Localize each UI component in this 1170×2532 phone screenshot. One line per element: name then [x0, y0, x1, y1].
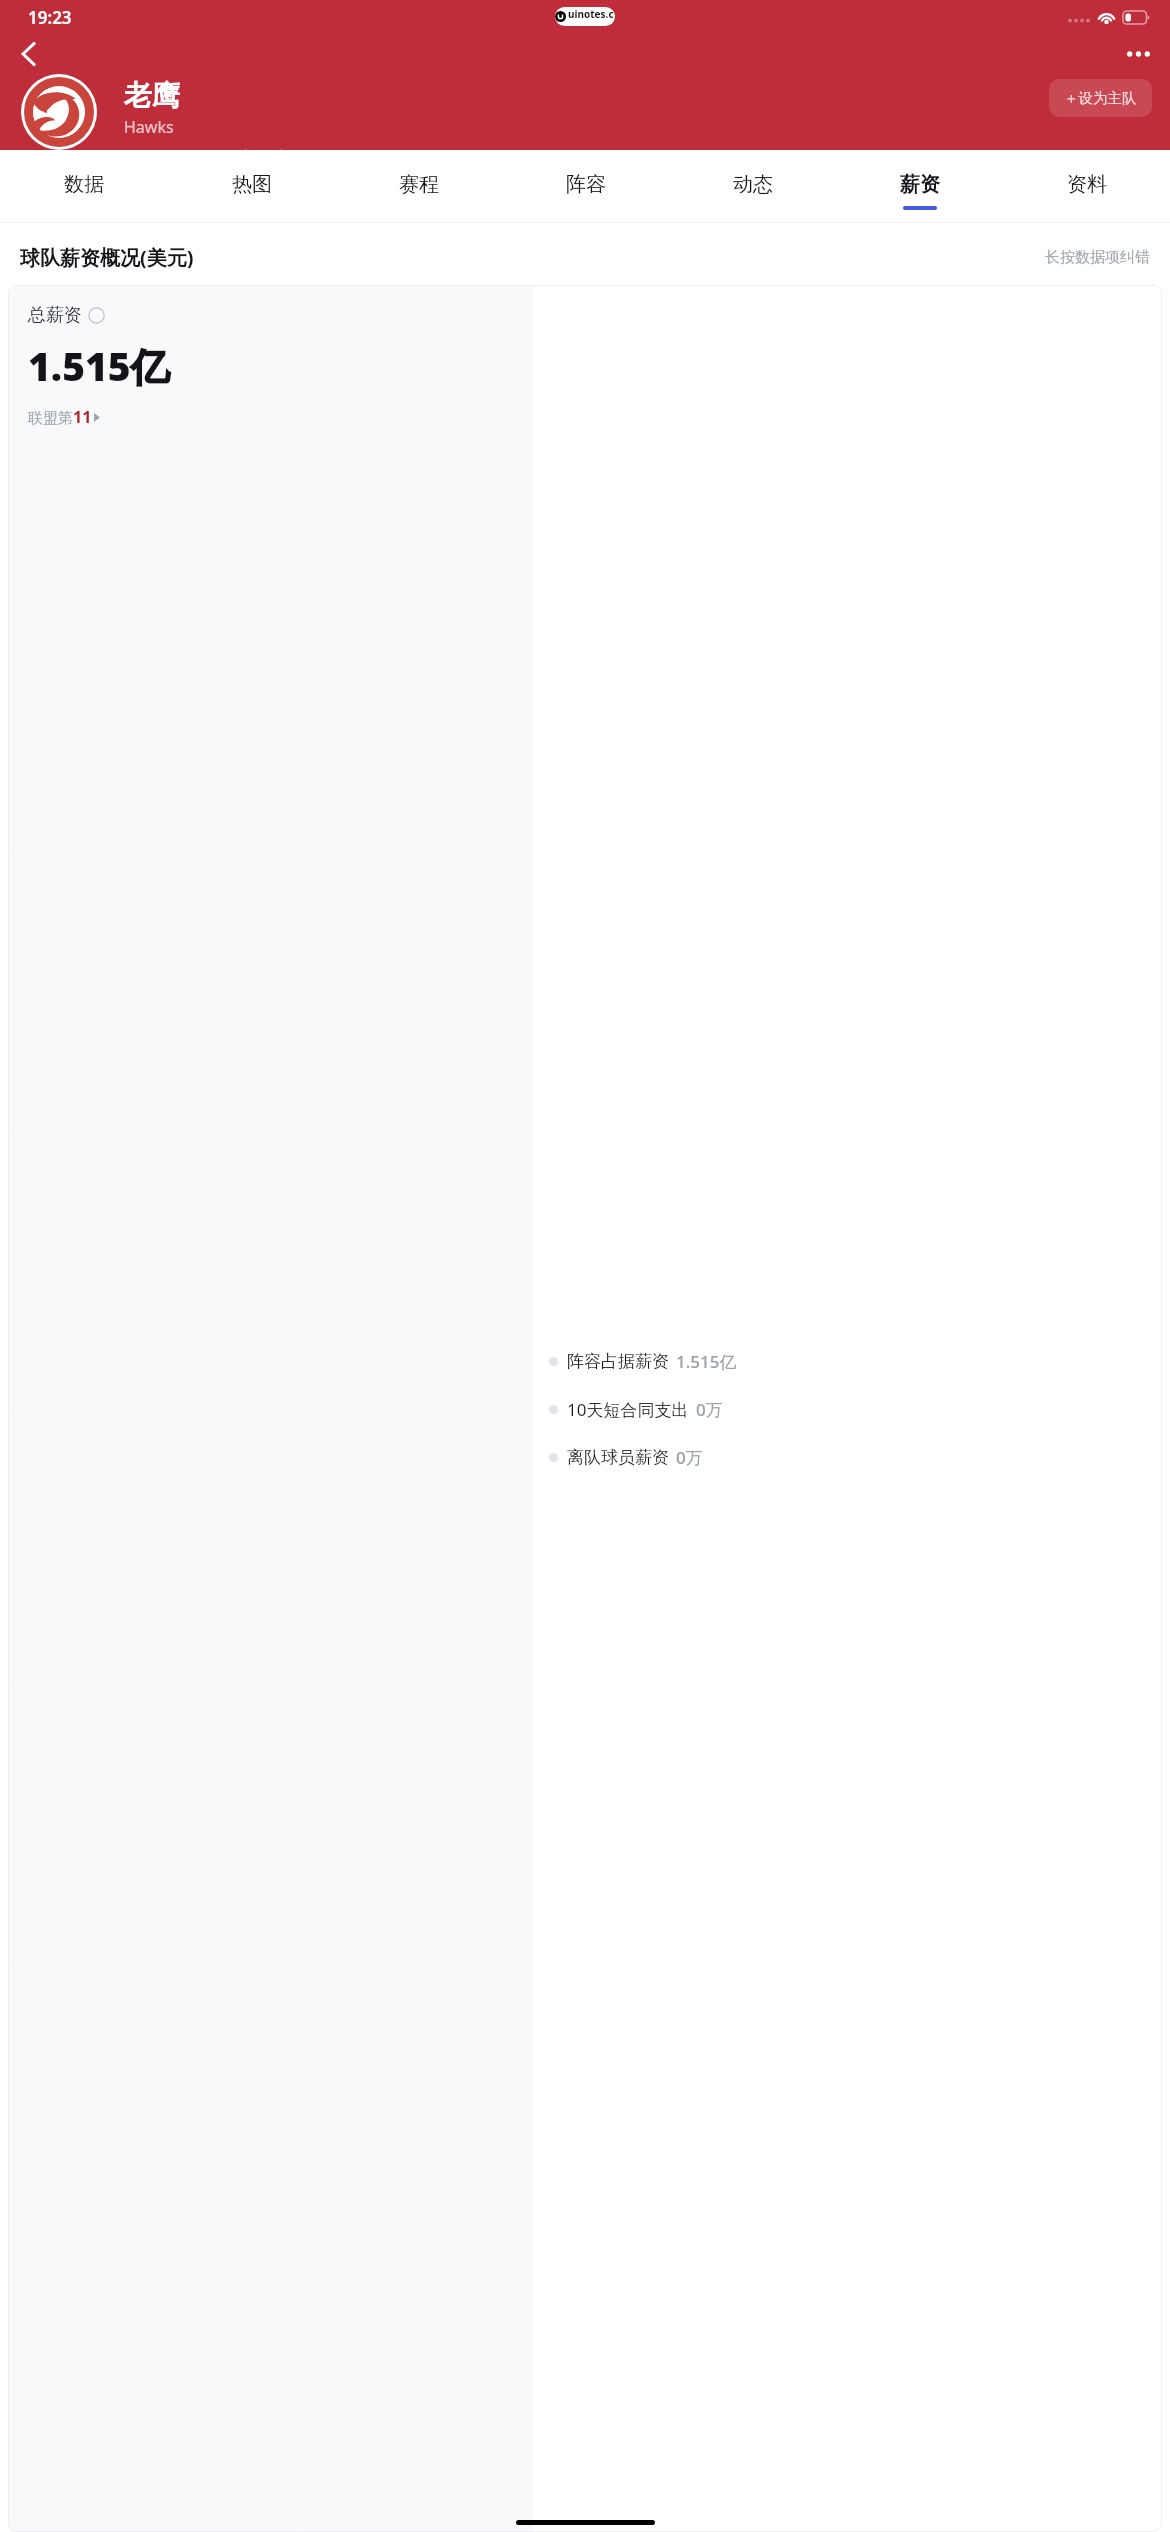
staticText: Hawks	[124, 116, 174, 138]
staticText: 赛程	[399, 172, 439, 197]
staticText: uinotes.com	[568, 7, 615, 26]
button[interactable]: 返回	[6, 34, 50, 74]
staticText: 阵容	[566, 172, 606, 197]
staticText: 19:23	[28, 6, 72, 29]
staticText: 长按数据项纠错	[1045, 248, 1150, 267]
staticText: 1.515亿	[28, 339, 170, 392]
staticText: 热图	[232, 172, 272, 197]
staticText: 球队薪资概况(美元)	[20, 244, 194, 271]
staticText: 老鹰	[124, 78, 180, 113]
staticText: 总薪资	[28, 304, 82, 327]
staticText: 10天短合同支出	[567, 1398, 689, 1421]
button[interactable]: 阵容	[502, 150, 669, 222]
staticText: 联盟第11	[28, 406, 92, 428]
staticText: 乔治亚州亚特兰大市/国家农业球馆	[124, 146, 347, 150]
staticText: 数据	[64, 172, 104, 197]
button[interactable]: 数据	[0, 150, 168, 222]
staticText: 离队球员薪资	[567, 1447, 669, 1468]
button[interactable]: 更多	[1116, 34, 1160, 74]
staticText: 资料	[1067, 172, 1107, 197]
staticText: 1.515亿	[676, 1350, 737, 1373]
staticText: 0万	[696, 1398, 723, 1421]
staticText: ＋设为主队	[1064, 89, 1137, 107]
staticText: 动态	[733, 172, 773, 197]
staticText: 阵容占据薪资	[567, 1351, 669, 1372]
button[interactable]: ＋设为主队	[1049, 79, 1152, 117]
button[interactable]: 动态	[669, 150, 836, 222]
button[interactable]: 资料	[1003, 150, 1170, 222]
staticText: 0万	[676, 1446, 703, 1469]
button[interactable]: 薪资	[836, 150, 1003, 222]
button[interactable]: 热图	[168, 150, 335, 222]
button[interactable]: 赛程	[335, 150, 502, 222]
staticText: 薪资	[900, 172, 940, 197]
button[interactable]: 总薪资	[8, 285, 1162, 2532]
